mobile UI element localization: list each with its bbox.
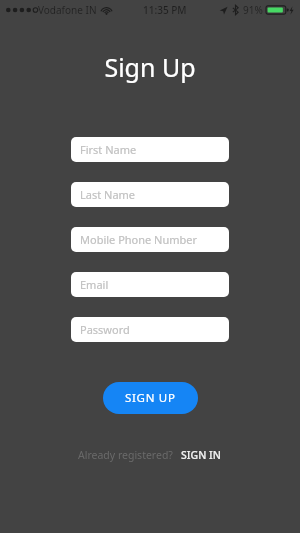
button[interactable]: Last Name — [71, 182, 229, 207]
staticText: Last Name — [80, 187, 136, 202]
staticText: Sign Up — [104, 50, 196, 84]
staticText: Email — [80, 277, 109, 292]
button[interactable]: First Name — [71, 137, 229, 162]
staticText: SIGN IN — [181, 448, 221, 462]
button[interactable]: Email — [71, 272, 229, 297]
button[interactable]: SIGN UP — [103, 382, 198, 414]
staticText: SIGN UP — [125, 390, 176, 406]
staticText: First Name — [80, 142, 137, 157]
button[interactable]: Mobile Phone Number — [71, 227, 229, 252]
staticText: Vodafone IN — [38, 3, 97, 17]
button[interactable]: SIGN IN — [179, 446, 223, 464]
staticText: 11:35 PM — [143, 3, 187, 17]
staticText: Password — [80, 322, 130, 337]
staticText: 91% — [243, 3, 263, 17]
button[interactable]: Password — [71, 317, 229, 342]
staticText: Already registered? — [78, 448, 173, 462]
staticText: Mobile Phone Number — [80, 232, 198, 247]
